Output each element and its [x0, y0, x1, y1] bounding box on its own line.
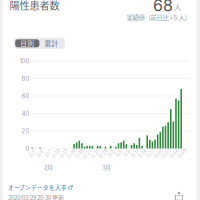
staticText: 3/20	[153, 151, 164, 156]
staticText: 人	[174, 1, 181, 12]
staticText: 3/2	[107, 151, 115, 156]
staticText: 3/8	[123, 151, 131, 156]
staticText: 3/23	[161, 151, 172, 156]
staticText: 100	[19, 57, 29, 65]
staticText: 2/28	[98, 151, 109, 156]
staticText: 2/19	[75, 151, 85, 156]
staticText: 3/14	[138, 151, 148, 156]
staticText: 20	[21, 127, 29, 135]
staticText: 2/13	[59, 151, 69, 156]
staticText: 2月	[44, 163, 53, 171]
staticText: 3/11	[130, 151, 139, 156]
button[interactable]: 累計	[39, 39, 64, 47]
button[interactable]: 日別	[15, 39, 39, 47]
staticText: 68	[153, 0, 173, 15]
staticText: 陽性患者数	[9, 0, 59, 12]
staticText: 3/17	[146, 151, 155, 156]
staticText: 0	[25, 145, 29, 152]
staticText: 3月	[102, 163, 111, 171]
staticText: 80	[21, 75, 29, 82]
staticText: 40	[21, 110, 29, 117]
button[interactable]: 共有	[175, 191, 183, 200]
staticText: 累計	[44, 38, 58, 48]
staticText: 2/1	[29, 151, 36, 156]
staticText: 2/7	[45, 151, 52, 156]
staticText: 3/5	[115, 151, 123, 156]
button[interactable]: オープンデータを入手	[8, 183, 73, 191]
staticText: 2/22	[82, 151, 93, 156]
staticText: 2020/03/29 20:30 更新	[8, 193, 64, 200]
staticText: 2/16	[67, 151, 77, 156]
staticText: 60	[21, 92, 29, 100]
staticText: 実績値（前日比 +5 人）	[126, 13, 190, 22]
staticText: 3/29	[177, 151, 188, 156]
staticText: 2/10	[51, 151, 61, 156]
staticText: 2/25	[90, 151, 101, 156]
staticText: 2/4	[36, 151, 44, 156]
staticText: 3/26	[169, 151, 180, 156]
staticText: オープンデータを入手	[8, 183, 67, 191]
staticText: 日別	[20, 38, 34, 48]
